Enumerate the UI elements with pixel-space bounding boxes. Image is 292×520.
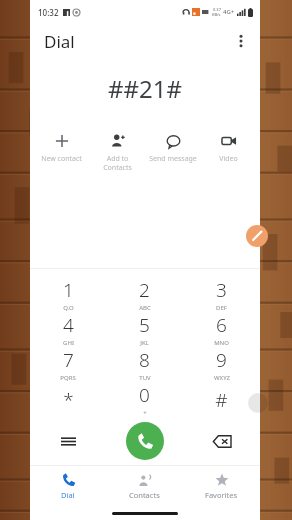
staticText: 0: [139, 382, 150, 408]
button[interactable]: Add to Contacts: [90, 130, 145, 174]
staticText: *: [63, 387, 74, 413]
button[interactable]: Backspace: [183, 417, 260, 465]
staticText: Favorites: [205, 490, 238, 500]
button[interactable]: 8: [106, 347, 183, 382]
staticText: 7: [63, 347, 74, 373]
button[interactable]: 5: [106, 312, 183, 347]
staticText: 9: [216, 347, 227, 373]
button[interactable]: Contacts: [106, 466, 183, 506]
staticText: ABC: [139, 304, 151, 312]
staticText: #: [215, 387, 228, 413]
button[interactable]: 0: [106, 382, 183, 417]
staticText: New contact: [41, 154, 82, 164]
staticText: Add to Contacts: [103, 154, 132, 172]
staticText: Send message: [149, 154, 197, 164]
staticText: Q.O: [63, 304, 74, 312]
staticText: 2: [139, 277, 150, 303]
button[interactable]: 3: [183, 277, 260, 312]
staticText: 10:32: [38, 7, 59, 18]
staticText: 0.37: [213, 7, 221, 12]
button[interactable]: #: [183, 382, 260, 417]
button[interactable]: 9: [183, 347, 260, 382]
button[interactable]: Favorites: [183, 466, 260, 506]
staticText: 8: [139, 347, 150, 373]
staticText: WXYZ: [214, 374, 230, 382]
staticText: Contacts: [129, 490, 160, 500]
button[interactable]: Send message: [145, 130, 200, 166]
staticText: MNO: [214, 339, 229, 347]
staticText: 6: [216, 312, 227, 338]
button[interactable]: Call: [126, 422, 164, 460]
staticText: DEF: [216, 304, 227, 312]
button[interactable]: *: [30, 382, 106, 417]
button[interactable]: Edit: [246, 225, 268, 247]
button[interactable]: 4: [30, 312, 106, 347]
button[interactable]: Dialpad options: [30, 417, 106, 465]
staticText: Dial: [44, 30, 75, 53]
button[interactable]: 6: [183, 312, 260, 347]
staticText: GHI: [63, 339, 74, 347]
staticText: Dial: [61, 490, 75, 500]
staticText: 5: [139, 312, 150, 338]
staticText: Video: [219, 154, 238, 164]
button[interactable]: More options: [228, 28, 254, 54]
staticText: +: [143, 409, 147, 417]
button[interactable]: 1: [30, 277, 106, 312]
staticText: KB/s: [212, 12, 221, 17]
staticText: ##21#: [108, 72, 182, 105]
staticText: 3: [216, 277, 227, 303]
staticText: TUV: [139, 374, 151, 382]
button[interactable]: 7: [30, 347, 106, 382]
staticText: 4: [63, 312, 74, 338]
button[interactable]: Video: [201, 130, 256, 166]
staticText: 1: [63, 277, 74, 303]
staticText: JKL: [140, 339, 149, 347]
staticText: PQRS: [60, 374, 76, 382]
button[interactable]: 2: [106, 277, 183, 312]
button[interactable]: New contact: [34, 130, 89, 166]
button[interactable]: Dial: [30, 466, 106, 506]
staticText: 4G+: [223, 8, 235, 16]
